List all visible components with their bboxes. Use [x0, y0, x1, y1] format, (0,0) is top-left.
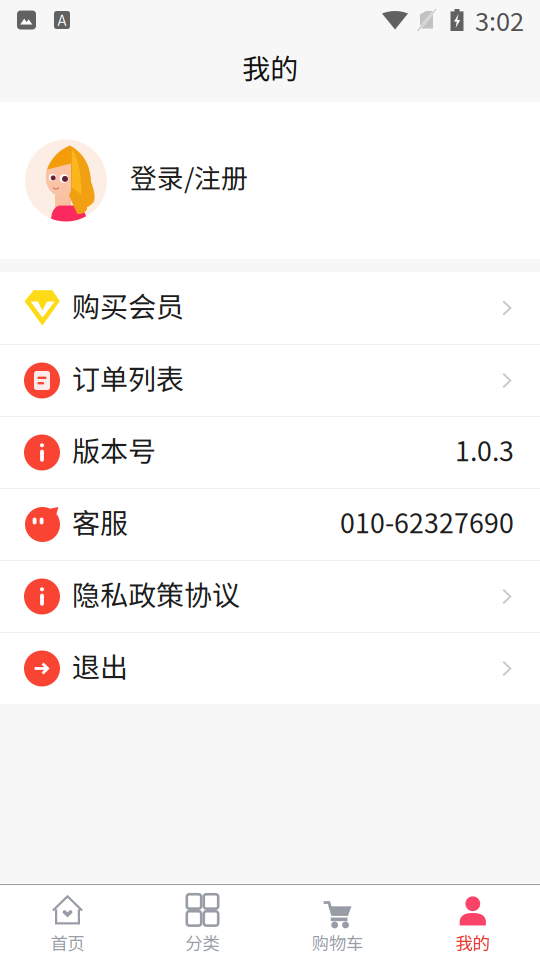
- staticText: 购买会员: [72, 285, 184, 325]
- staticText: 客服: [72, 501, 128, 542]
- staticText: 3:02: [475, 2, 524, 38]
- button[interactable]: 隐私政策协议: [0, 561, 540, 633]
- staticText: 购物车: [312, 930, 363, 955]
- staticText: 首页: [50, 930, 84, 955]
- staticText: 订单列表: [72, 357, 184, 398]
- staticText: 010-62327690: [340, 502, 514, 541]
- staticText: A: [57, 9, 66, 30]
- button[interactable]: 版本号: [0, 417, 540, 489]
- button[interactable]: 我的: [405, 885, 540, 960]
- staticText: 登录/注册: [130, 157, 248, 196]
- button[interactable]: 购物车: [270, 885, 405, 960]
- staticText: 我的: [242, 47, 298, 87]
- staticText: 我的: [455, 930, 489, 955]
- staticText: 版本号: [72, 429, 156, 470]
- button[interactable]: 首页: [0, 885, 135, 960]
- staticText: 隐私政策协议: [72, 573, 240, 614]
- button[interactable]: 分类: [135, 885, 270, 960]
- button[interactable]: 登录/注册: [0, 102, 540, 259]
- staticText: 分类: [185, 930, 219, 955]
- button[interactable]: 客服: [0, 489, 540, 561]
- staticText: 退出: [72, 645, 128, 686]
- button[interactable]: 退出: [0, 633, 540, 704]
- button[interactable]: 订单列表: [0, 345, 540, 417]
- button[interactable]: 购买会员: [0, 272, 540, 345]
- staticText: 1.0.3: [455, 430, 514, 469]
